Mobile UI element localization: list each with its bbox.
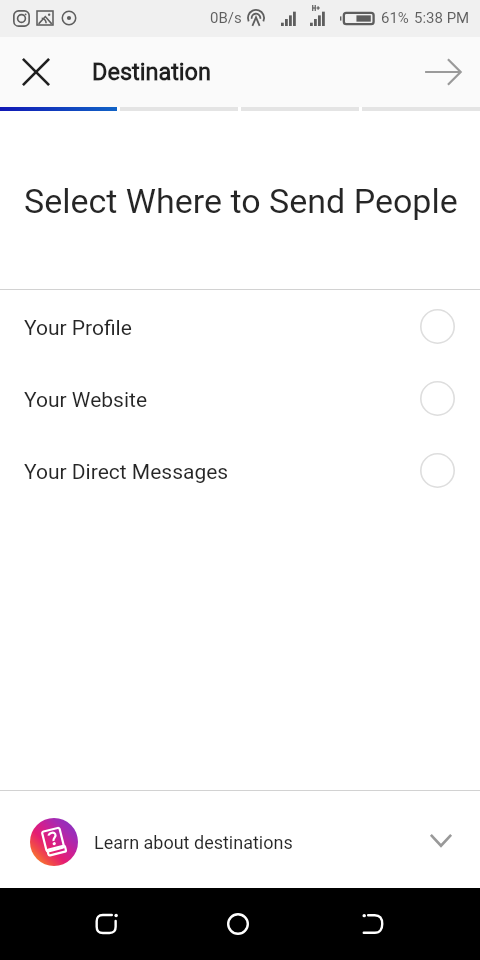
staticText: 61% bbox=[381, 9, 409, 27]
button[interactable]: Close bbox=[12, 48, 60, 96]
button[interactable]: Learn about destinations bbox=[0, 791, 480, 888]
button[interactable]: Back bbox=[71, 888, 143, 960]
button[interactable]: Your Direct Messages bbox=[0, 434, 480, 506]
button[interactable]: Next bbox=[416, 44, 470, 100]
staticText: Destination bbox=[92, 58, 211, 86]
staticText: Learn about destinations bbox=[94, 832, 293, 853]
button[interactable]: Home bbox=[202, 888, 274, 960]
staticText: Your Website bbox=[24, 388, 148, 413]
button[interactable]: Recents bbox=[337, 888, 409, 960]
staticText: 0B/s bbox=[210, 9, 242, 27]
staticText: Select Where to Send People bbox=[24, 181, 458, 221]
staticText: Your Direct Messages bbox=[24, 460, 229, 485]
staticText: Your Profile bbox=[24, 316, 132, 341]
staticText: 5:38 PM bbox=[414, 9, 470, 27]
button[interactable]: Your Website bbox=[0, 362, 480, 434]
button[interactable]: Your Profile bbox=[0, 290, 480, 362]
